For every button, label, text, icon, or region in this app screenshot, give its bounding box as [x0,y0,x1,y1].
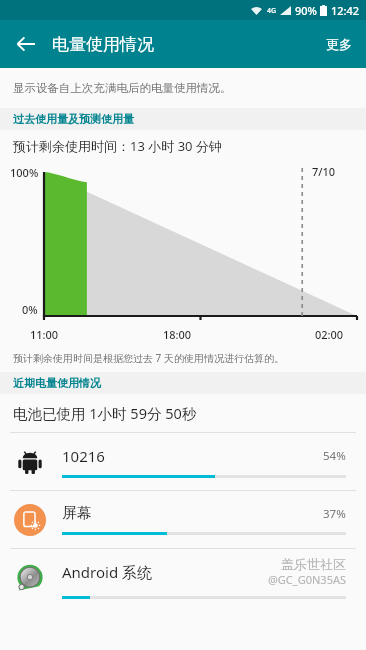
staticText: 90% [295,3,317,18]
button[interactable]: 10216 [0,433,366,490]
staticText: 4G [267,6,277,16]
staticText: 11:00 [30,327,59,342]
staticText: 10216 [62,446,105,466]
staticText: 更多 [326,36,352,52]
staticText: 12:42 [331,3,360,18]
staticText: 02:00 [315,327,344,342]
staticText: 预计剩余使用时间：13 小时 30 分钟 [13,137,222,155]
staticText: 屏幕 [62,504,92,523]
staticText: 100% [10,165,39,180]
staticText: 近期电量使用情况 [13,376,101,390]
button[interactable]: 屏幕 [0,491,366,548]
staticText: 37% [323,506,346,522]
staticText: 显示设备自上次充满电后的电量使用情况。 [13,81,232,95]
staticText: 7/10 [312,164,336,179]
button[interactable]: 返回 [8,26,44,62]
staticText: 18:00 [163,327,192,342]
staticText: 过去使用量及预测使用量 [13,112,134,126]
button[interactable]: 更多 [316,28,362,60]
staticText: 盖乐世社区 [281,556,346,572]
staticText: 54% [323,448,346,464]
button[interactable]: Android 系统 [0,549,366,606]
staticText: Android 系统 [62,562,153,582]
staticText: 电池已使用 1小时 59分 50秒 [13,403,197,423]
staticText: 预计剩余使用时间是根据您过去 7 天的使用情况进行估算的。 [13,351,284,365]
staticText: 电量使用情况 [52,34,154,55]
staticText: 0% [22,302,38,317]
staticText: @GC_G0N35AS [267,572,346,587]
